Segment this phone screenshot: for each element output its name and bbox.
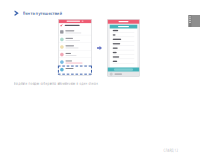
- button[interactable]: [58, 43, 91, 50]
- button[interactable]: [58, 65, 91, 73]
- button[interactable]: [58, 50, 91, 57]
- button[interactable]: [58, 28, 91, 35]
- staticText: Все детали поездки собираются автоматиче…: [13, 82, 97, 85]
- button[interactable]: [58, 58, 91, 65]
- button[interactable]: [58, 35, 91, 42]
- button[interactable]: [107, 67, 139, 72]
- staticText: СЛАЙД 12: [163, 149, 178, 152]
- staticText: Лента путешествий: [22, 10, 62, 16]
